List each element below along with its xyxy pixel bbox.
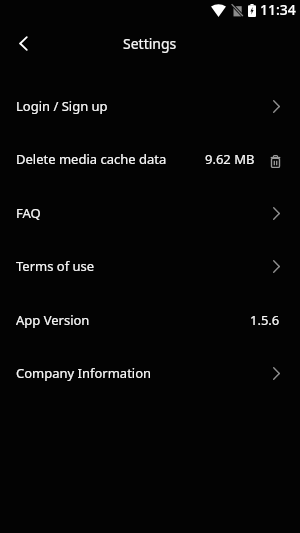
button[interactable]: FAQ	[0, 186, 300, 240]
button[interactable]: App Version	[0, 293, 300, 347]
staticText: Terms of use	[16, 257, 95, 275]
staticText: 1.5.6	[250, 311, 280, 329]
staticText: App Version	[16, 311, 90, 329]
staticText: FAQ	[16, 204, 41, 222]
staticText: Settings	[123, 34, 177, 53]
button[interactable]: Terms of use	[0, 239, 300, 293]
staticText: 9.62 MB	[205, 150, 255, 168]
button[interactable]: Company Information	[0, 346, 300, 400]
staticText: Login / Sign up	[16, 97, 108, 115]
staticText: Delete media cache data	[16, 150, 167, 168]
button[interactable]: Delete media cache data	[0, 132, 300, 186]
staticText: Company Information	[16, 364, 152, 382]
button[interactable]: Login / Sign up	[0, 79, 300, 133]
button[interactable]	[8, 28, 38, 58]
staticText: 11:34	[260, 0, 296, 19]
